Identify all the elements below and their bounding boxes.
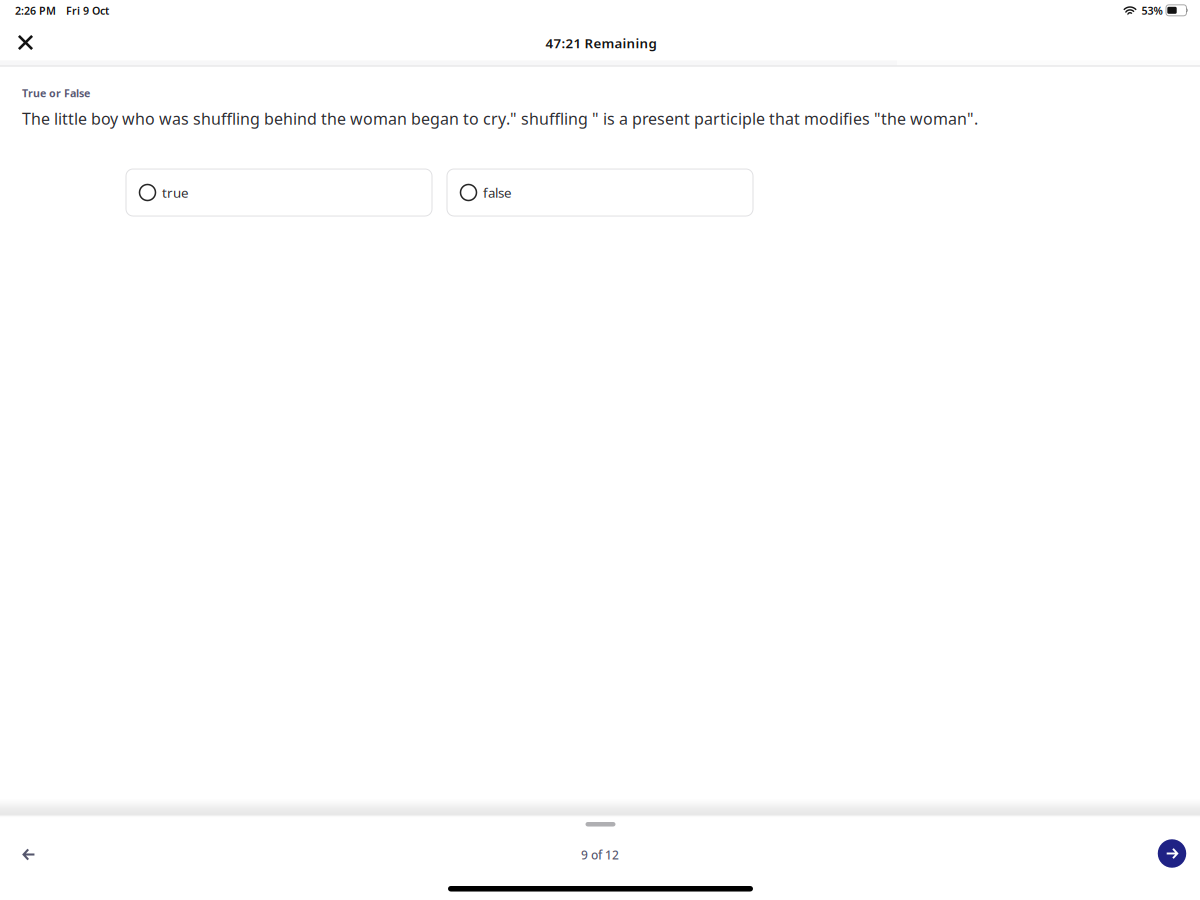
- staticText: 2:26 PM: [15, 3, 56, 18]
- button[interactable]: Previous question: [12, 837, 46, 871]
- staticText: 9 of 12: [581, 847, 619, 863]
- staticText: True or False: [22, 86, 90, 100]
- staticText: true: [162, 184, 189, 201]
- button[interactable]: Close: [9, 26, 41, 58]
- button[interactable]: Next question: [1155, 836, 1189, 870]
- button[interactable]: false: [447, 169, 753, 216]
- staticText: 53%: [1141, 3, 1162, 18]
- staticText: Fri 9 Oct: [66, 3, 109, 18]
- staticText: false: [483, 184, 512, 201]
- staticText: The little boy who was shuffling behind …: [22, 108, 978, 129]
- staticText: 47:21 Remaining: [545, 34, 656, 52]
- button[interactable]: true: [126, 169, 432, 216]
